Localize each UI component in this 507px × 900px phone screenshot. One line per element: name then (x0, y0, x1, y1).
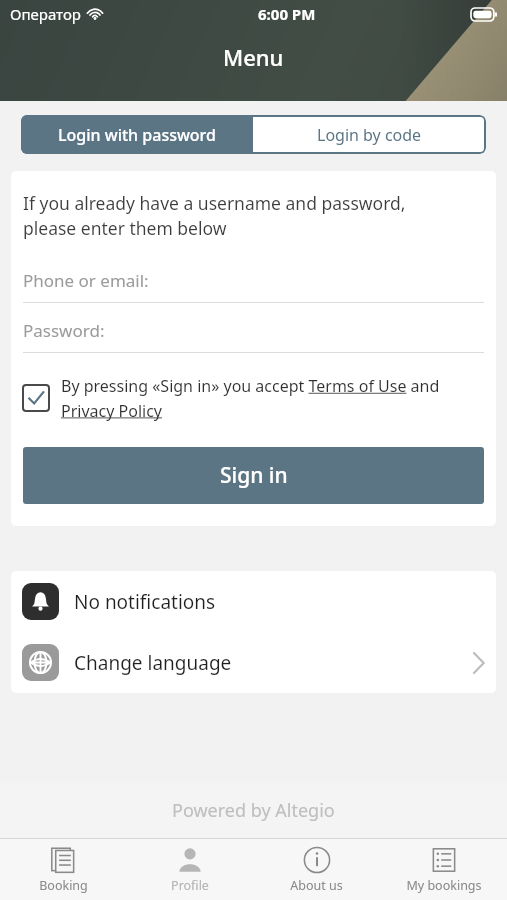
button[interactable]: About us (253, 839, 380, 900)
staticText: Profile (171, 877, 209, 894)
button[interactable]: Login with password (21, 115, 253, 154)
staticText: Sign in (220, 461, 288, 490)
staticText: Password: (23, 319, 105, 342)
staticText: 6:00 PM (258, 4, 316, 24)
button[interactable]: My bookings (380, 839, 507, 900)
button[interactable]: Profile (126, 839, 253, 900)
staticText: About us (290, 877, 343, 894)
button[interactable]: By pressing «Sign in» you accept Terms o… (23, 375, 484, 421)
button[interactable]: Change language (11, 632, 496, 693)
button[interactable]: Login by code (253, 115, 486, 154)
staticText: Powered by Altegio (172, 798, 335, 823)
staticText: My bookings (406, 877, 482, 894)
button[interactable]: Booking (0, 839, 126, 900)
staticText: No notifications (74, 589, 216, 615)
staticText: Change language (74, 650, 232, 676)
button[interactable]: Password: (23, 319, 484, 353)
staticText: By pressing «Sign in» you accept Terms o… (61, 375, 484, 421)
staticText: Login by code (317, 124, 422, 146)
staticText: Оператор (10, 4, 81, 24)
staticText: Login with password (58, 124, 216, 146)
button[interactable]: No notifications (11, 571, 496, 632)
button[interactable]: Phone or email: (23, 269, 484, 303)
button[interactable]: Sign in (23, 447, 484, 504)
staticText: Menu (223, 42, 284, 72)
staticText: Phone or email: (23, 269, 149, 292)
staticText: If you already have a username and passw… (23, 191, 406, 241)
staticText: Booking (39, 877, 88, 894)
